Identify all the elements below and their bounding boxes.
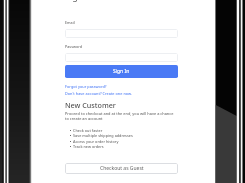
staticText: New Customer bbox=[65, 100, 116, 110]
button[interactable]: Sign In bbox=[65, 65, 178, 78]
staticText: Don't have account? Create one now. bbox=[65, 91, 132, 96]
staticText: Email bbox=[65, 20, 75, 25]
staticText: Access your order history bbox=[73, 139, 119, 144]
staticText: Forgot your password? bbox=[65, 84, 107, 89]
staticText: Sign In bbox=[65, 0, 95, 2]
button[interactable]: Password field bbox=[65, 53, 178, 62]
staticText: Checkout as Guest bbox=[100, 165, 144, 172]
button[interactable]: Email field bbox=[65, 29, 178, 38]
staticText: Sign In bbox=[113, 68, 130, 75]
staticText: Track new orders bbox=[73, 144, 104, 149]
button[interactable]: Forgot your password? bbox=[65, 84, 107, 89]
button[interactable]: Checkout as Guest bbox=[65, 163, 178, 174]
button[interactable]: Don't have account? Create one now. bbox=[65, 91, 132, 96]
staticText: Proceed to checkout and at the end, you … bbox=[65, 111, 176, 121]
staticText: Save multiple shipping addresses bbox=[73, 133, 133, 138]
staticText: Password bbox=[65, 44, 82, 49]
staticText: Check out faster bbox=[73, 128, 103, 133]
